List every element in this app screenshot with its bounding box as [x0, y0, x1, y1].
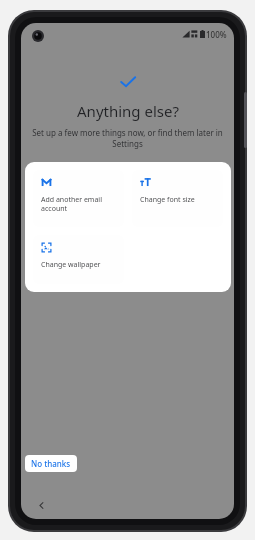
- staticText: Change wallpaper: [41, 260, 101, 270]
- staticText: No thanks: [31, 458, 71, 469]
- staticText: Anything else?: [77, 101, 179, 121]
- staticText: 100%: [206, 29, 227, 40]
- button[interactable]: Add another email account: [33, 170, 124, 227]
- staticText: Add another email account: [41, 195, 102, 213]
- button[interactable]: Change font size: [132, 170, 223, 227]
- button[interactable]: No thanks: [25, 455, 77, 472]
- button[interactable]: Back: [33, 497, 49, 513]
- button[interactable]: Change wallpaper: [33, 235, 124, 284]
- staticText: Set up a few more things now, or find th…: [31, 127, 224, 149]
- staticText: Change font size: [140, 195, 195, 205]
